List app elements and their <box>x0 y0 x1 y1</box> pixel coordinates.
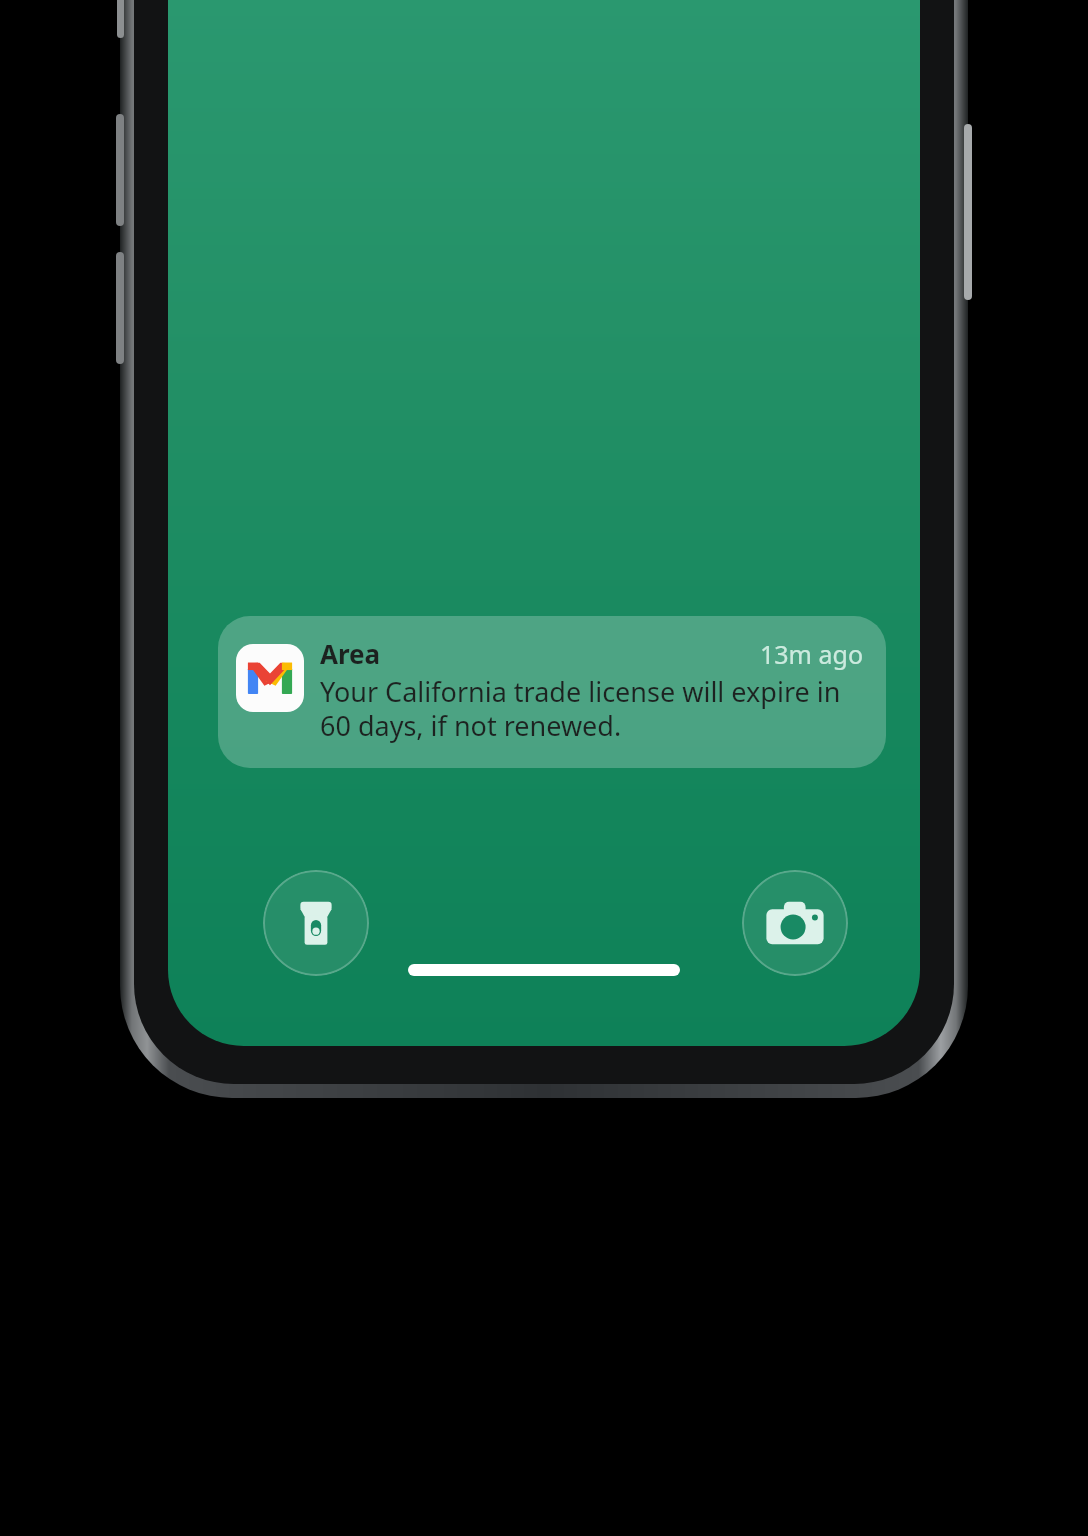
button[interactable]: Flashlight <box>263 870 369 976</box>
staticText: Your California trade license will expir… <box>320 673 864 744</box>
button[interactable]: Camera <box>742 870 848 976</box>
staticText: Area <box>320 636 381 671</box>
button[interactable]: Area <box>218 616 886 768</box>
staticText: 13m ago <box>760 637 864 671</box>
